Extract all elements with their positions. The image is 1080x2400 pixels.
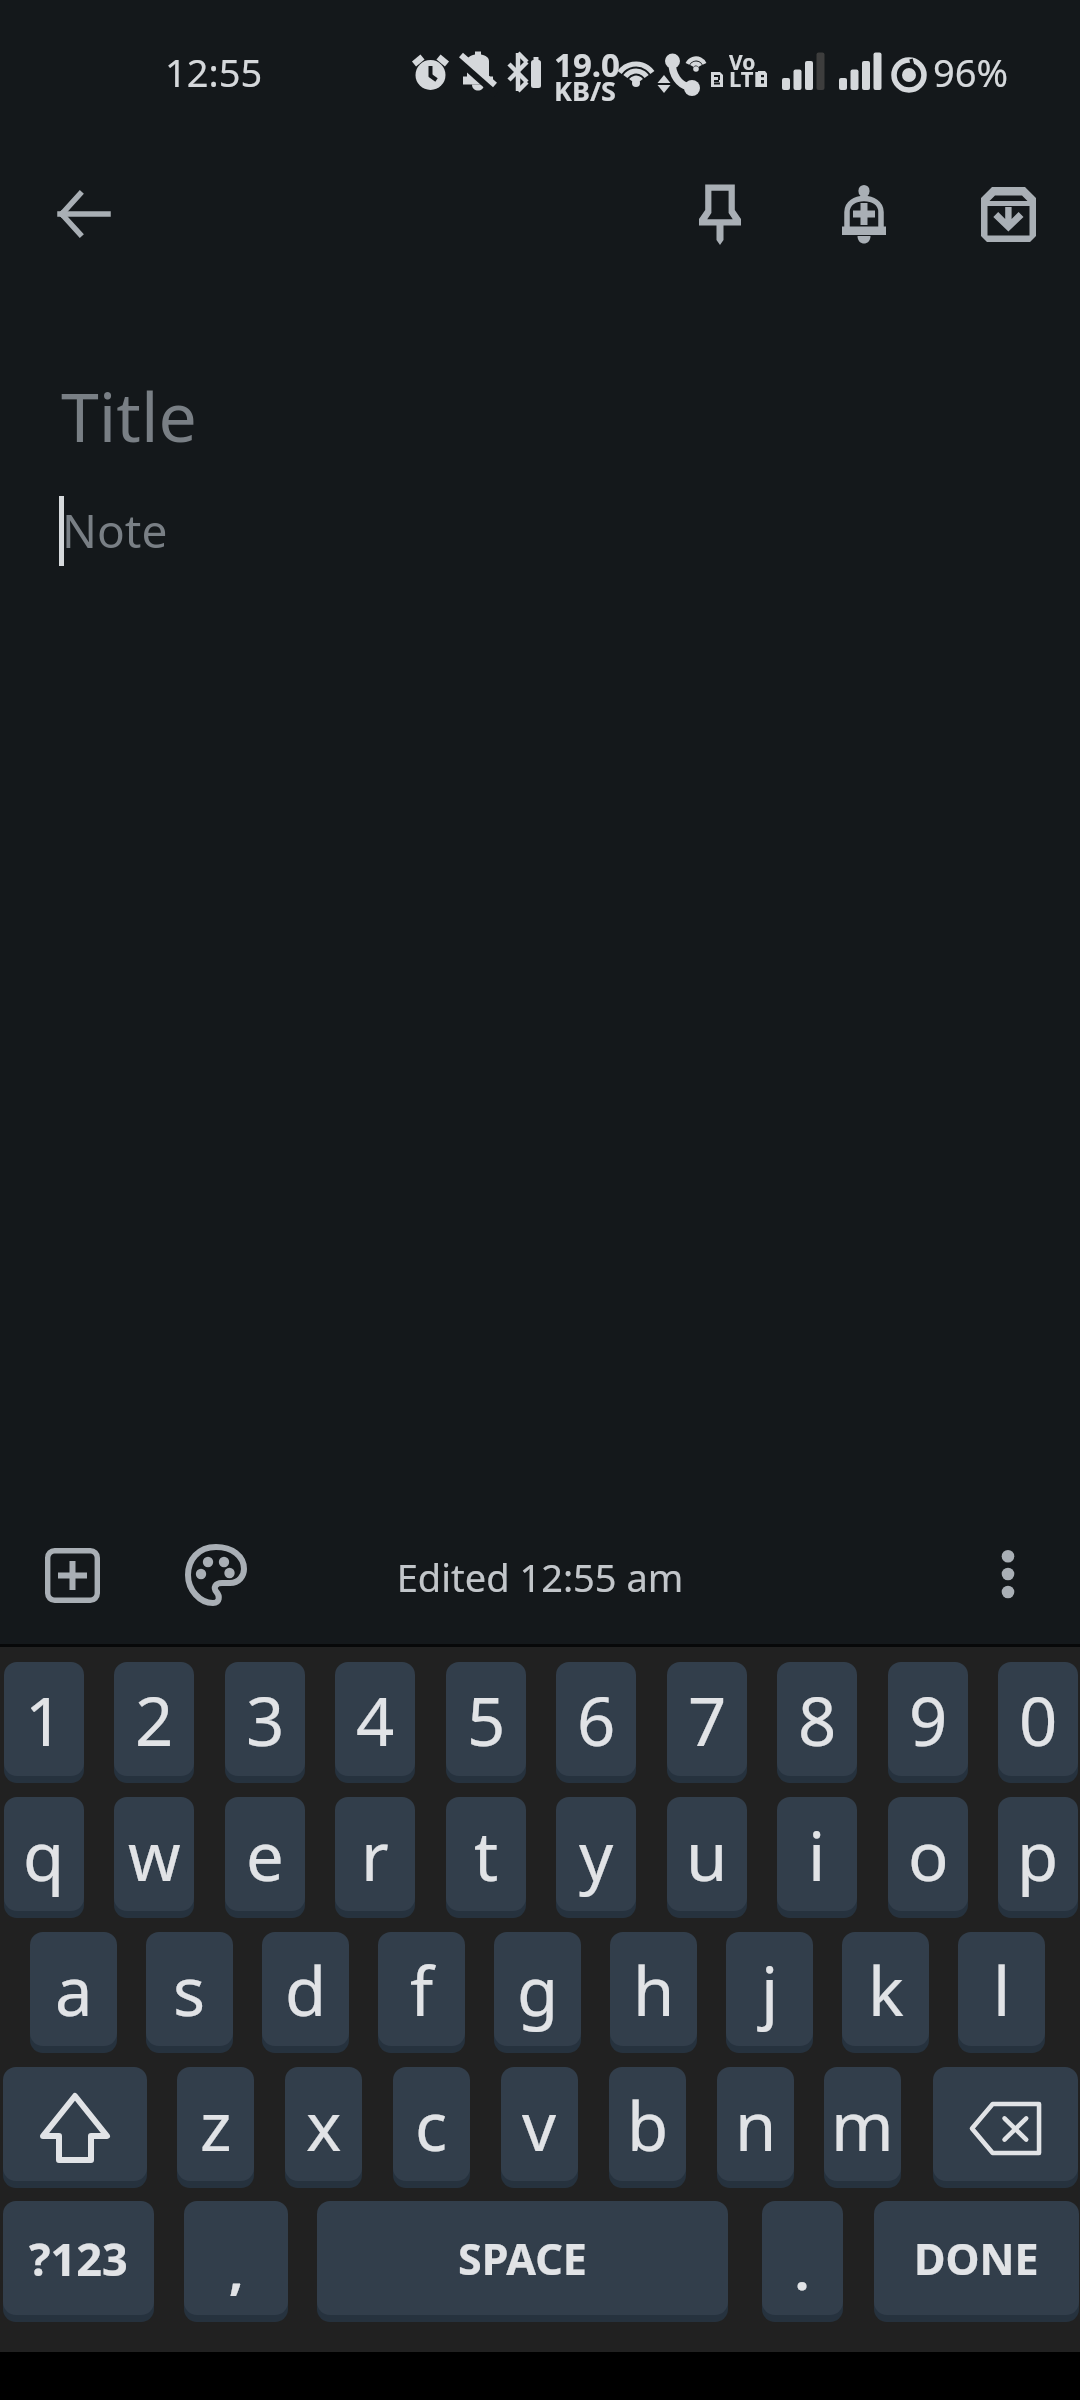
staticText: Note [62,499,168,562]
button[interactable]: ?123 [3,2201,154,2315]
staticText: 96% [933,46,1009,98]
staticText: q [23,1809,65,1900]
button[interactable]: DONE [874,2201,1079,2315]
staticText: p [1017,1809,1059,1900]
staticText: 4 [356,1674,395,1765]
staticText: 0 [1019,1674,1058,1765]
staticText: x [306,2079,342,2170]
button[interactable]: Title [0,350,1080,460]
staticText: a [55,1944,93,2035]
button[interactable]: c [393,2067,470,2181]
button[interactable]: o [888,1797,968,1911]
button[interactable]: 6 [556,1662,636,1776]
staticText: w [128,1809,181,1900]
button[interactable]: Shift [3,2067,147,2181]
staticText: c [415,2079,448,2170]
staticText: Edited 12:55 am [0,1551,1080,1603]
button[interactable]: v [501,2067,578,2181]
button[interactable]: t [446,1797,526,1911]
button[interactable]: z [177,2067,254,2181]
button[interactable]: e [225,1797,305,1911]
staticText: m [831,2079,894,2170]
staticText: o [908,1809,949,1900]
staticText: b [627,2079,669,2170]
staticText: r [361,1809,389,1900]
staticText: DONE [914,2229,1039,2288]
button[interactable]: 8 [777,1662,857,1776]
staticText: ?123 [29,2228,128,2289]
staticText: KB/S [554,72,616,109]
staticText: s [173,1944,206,2035]
staticText: d [285,1944,327,2035]
staticText: z [200,2079,232,2170]
staticText: y [579,1809,614,1900]
button[interactable]: 5 [446,1662,526,1776]
staticText: , [229,2237,244,2305]
button[interactable]: i [777,1797,857,1911]
staticText: g [517,1944,559,2035]
staticText: LTE [729,63,766,93]
staticText: t [474,1809,499,1900]
staticText: e [246,1809,284,1900]
button[interactable]: 0 [998,1662,1078,1776]
button[interactable]: 4 [335,1662,415,1776]
staticText: f [410,1944,434,2035]
button[interactable]: w [114,1797,194,1911]
button[interactable]: p [998,1797,1078,1911]
button[interactable]: a [30,1932,117,2046]
staticText: k [868,1944,904,2035]
button[interactable]: g [494,1932,581,2046]
button[interactable]: Add reminder [816,166,912,262]
button[interactable]: y [556,1797,636,1911]
button[interactable]: , [184,2201,288,2315]
button[interactable]: Note [0,470,1080,1510]
button[interactable]: u [667,1797,747,1911]
button[interactable]: d [262,1932,349,2046]
staticText: 1 [25,1674,64,1765]
staticText: i [808,1809,826,1900]
staticText: j [761,1944,779,2035]
button[interactable]: x [285,2067,362,2181]
button[interactable]: n [717,2067,794,2181]
button[interactable]: 9 [888,1662,968,1776]
button[interactable]: Back [36,166,132,262]
button[interactable]: b [609,2067,686,2181]
button[interactable]: j [726,1932,813,2046]
button[interactable]: k [842,1932,929,2046]
staticText: u [686,1809,728,1900]
button[interactable]: s [146,1932,233,2046]
staticText: 9 [909,1674,948,1765]
button[interactable]: Change colour [168,1542,264,1608]
button[interactable]: f [378,1932,465,2046]
staticText: 7 [688,1674,727,1765]
button[interactable]: Archive [960,166,1056,262]
staticText: 8 [798,1674,837,1765]
button[interactable]: 2 [114,1662,194,1776]
button[interactable]: . [762,2201,843,2315]
button[interactable]: Backspace [933,2067,1078,2181]
button[interactable]: r [335,1797,415,1911]
staticText: 2 [135,1674,174,1765]
button[interactable]: q [4,1797,84,1911]
staticText: 12:55 [165,46,263,98]
staticText: h [633,1944,675,2035]
staticText: Title [61,369,197,462]
button[interactable]: 3 [225,1662,305,1776]
staticText: n [735,2079,777,2170]
button[interactable]: Pin note [672,166,768,262]
staticText: 6 [577,1674,616,1765]
staticText: 3 [246,1674,285,1765]
button[interactable]: h [610,1932,697,2046]
staticText: 19.0 [554,42,620,87]
button[interactable]: SPACE [317,2201,728,2315]
button[interactable]: Add item [24,1542,120,1608]
staticText: Vo [729,48,756,77]
button[interactable]: m [824,2067,901,2181]
button[interactable]: 7 [667,1662,747,1776]
button[interactable]: l [958,1932,1045,2046]
button[interactable]: 1 [4,1662,84,1776]
staticText: . [795,2237,810,2305]
staticText: v [522,2079,557,2170]
staticText: SPACE [458,2229,587,2288]
button[interactable]: More options [960,1534,1056,1616]
